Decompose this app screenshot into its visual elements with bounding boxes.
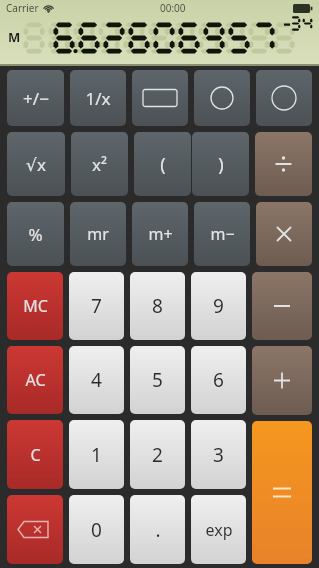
- button[interactable]: 1/x: [70, 70, 126, 126]
- staticText: 0: [91, 517, 102, 543]
- button[interactable]: 6: [191, 346, 246, 414]
- button[interactable]: 8: [130, 272, 185, 340]
- button[interactable]: ): [192, 132, 249, 196]
- button[interactable]: 9: [191, 272, 246, 340]
- button[interactable]: exp: [191, 495, 246, 564]
- staticText: .: [155, 517, 161, 543]
- button[interactable]: 7: [69, 272, 124, 340]
- button[interactable]: x²: [71, 132, 128, 196]
- staticText: x²: [92, 153, 107, 176]
- staticText: exp: [205, 519, 233, 541]
- button[interactable]: 4: [69, 346, 124, 414]
- staticText: 9: [213, 293, 224, 319]
- staticText: M: [8, 28, 21, 46]
- button[interactable]: Equals: [252, 421, 312, 564]
- staticText: 5: [152, 367, 163, 393]
- staticText: √x: [26, 153, 46, 176]
- staticText: mr: [87, 223, 109, 245]
- button[interactable]: m−: [194, 202, 250, 266]
- button[interactable]: Constant 42: [194, 70, 250, 126]
- button[interactable]: Divide: [255, 132, 312, 196]
- staticText: m−: [210, 223, 235, 245]
- button[interactable]: (: [134, 132, 191, 196]
- staticText: (: [160, 152, 166, 177]
- button[interactable]: +/−: [7, 70, 64, 126]
- staticText: 2: [152, 442, 163, 468]
- button[interactable]: Minus: [252, 272, 312, 340]
- staticText: Carrier: [6, 1, 39, 15]
- button[interactable]: C: [7, 420, 63, 489]
- staticText: 00:00: [160, 1, 186, 15]
- staticText: 4: [91, 367, 102, 393]
- button[interactable]: 3: [191, 420, 246, 489]
- button[interactable]: m+: [132, 202, 188, 266]
- button[interactable]: Plus: [252, 346, 312, 415]
- button[interactable]: %: [7, 202, 64, 266]
- button[interactable]: 2: [130, 420, 185, 489]
- staticText: +/−: [23, 87, 49, 110]
- staticText: 1/x: [85, 87, 111, 110]
- button[interactable]: √x: [7, 132, 65, 196]
- button[interactable]: 1: [69, 420, 124, 489]
- staticText: 8: [152, 293, 163, 319]
- staticText: 3: [213, 442, 224, 468]
- staticText: m+: [148, 223, 173, 245]
- staticText: C: [30, 444, 41, 466]
- button[interactable]: 0: [69, 495, 124, 564]
- staticText: ): [218, 152, 224, 177]
- staticText: 1: [91, 442, 102, 468]
- button[interactable]: 5: [130, 346, 185, 414]
- button[interactable]: Multiply: [256, 202, 312, 266]
- button[interactable]: Swap A and B: [132, 70, 188, 126]
- staticText: 6: [213, 367, 224, 393]
- button[interactable]: .: [130, 495, 185, 564]
- staticText: 7: [91, 293, 102, 319]
- button[interactable]: AC: [7, 346, 63, 414]
- button[interactable]: mr: [70, 202, 126, 266]
- staticText: MC: [23, 295, 48, 317]
- button[interactable]: Backspace: [7, 495, 63, 564]
- staticText: AC: [25, 369, 46, 391]
- button[interactable]: MC: [7, 272, 63, 340]
- button[interactable]: Info: [256, 70, 312, 126]
- staticText: %: [28, 223, 43, 246]
